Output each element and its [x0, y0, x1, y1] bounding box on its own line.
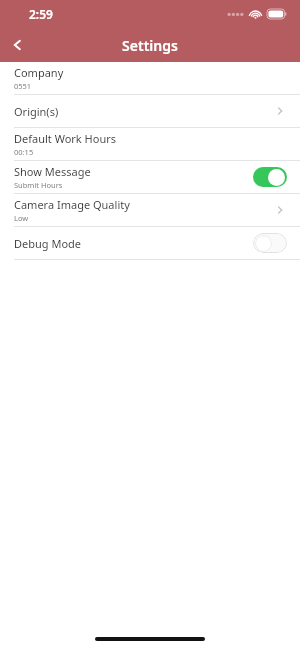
staticText: Company [14, 65, 64, 80]
staticText: Low [14, 213, 29, 223]
button[interactable]: Camera Image Quality [0, 194, 300, 226]
staticText: 2:59 [29, 6, 53, 22]
staticText: Default Work Hours [14, 131, 117, 146]
staticText: 00:15 [14, 147, 34, 157]
button[interactable]: Default Work Hours [0, 128, 300, 160]
button[interactable]: Origin(s) [0, 95, 300, 127]
button[interactable]: Back [0, 28, 34, 62]
staticText: Show Message [14, 164, 91, 179]
staticText: Origin(s) [14, 104, 59, 119]
staticText: Debug Mode [14, 236, 82, 251]
button[interactable]: Company [0, 62, 300, 94]
staticText: Camera Image Quality [14, 197, 130, 212]
staticText: Submit Hours [14, 180, 63, 190]
staticText: Settings [122, 36, 178, 55]
button[interactable]: Toggle off [253, 233, 287, 253]
button[interactable]: Toggle on [253, 167, 287, 187]
button[interactable]: Debug Mode [0, 227, 300, 259]
button[interactable]: Show Message [0, 161, 300, 193]
staticText: 0551 [14, 81, 32, 91]
